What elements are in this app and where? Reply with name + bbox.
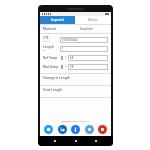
button[interactable]: 58 [68, 64, 108, 70]
button[interactable]: YouTube [98, 125, 107, 134]
button[interactable]: Metric [75, 16, 111, 24]
staticText: Total Length [43, 88, 62, 92]
staticText: in [43, 49, 45, 52]
staticText: 1 [62, 47, 64, 51]
button[interactable]: 1 [60, 46, 108, 52]
button[interactable]: Thermometer [60, 56, 64, 60]
button[interactable]: Facebook [71, 125, 80, 134]
staticText: Material [43, 27, 56, 31]
button[interactable]: Ref Temp [40, 53, 111, 62]
button[interactable]: Back [51, 137, 59, 145]
staticText: Length [43, 45, 54, 49]
button[interactable]: Home [72, 137, 80, 145]
staticText: Metric [88, 18, 98, 22]
staticText: 58 [70, 65, 74, 69]
button[interactable]: Recents [92, 137, 100, 145]
staticText: 10⁻⁶/°F [43, 40, 50, 43]
button[interactable]: 0.00000444 [60, 37, 108, 43]
staticText: 68 [70, 56, 74, 60]
staticText: CTE [43, 36, 49, 40]
staticText: Imperial [51, 18, 64, 22]
button[interactable]: Imperial [40, 16, 75, 24]
staticText: NEWSOM SOFTWARE, INC. [40, 120, 111, 123]
button[interactable]: Material [40, 25, 111, 33]
staticText: Ref Temp [43, 56, 58, 60]
button[interactable]: 68 [68, 55, 108, 61]
staticText: Mat Temp [43, 65, 59, 69]
button[interactable]: Twitter [44, 125, 53, 134]
staticText: ° [65, 55, 67, 60]
staticText: Graphite [80, 27, 94, 31]
button[interactable]: Length [40, 44, 111, 53]
staticText: 0.00000444 [62, 38, 78, 42]
button[interactable]: Mat Temp [40, 62, 111, 71]
button[interactable]: CTE [40, 35, 111, 44]
button[interactable]: Share [85, 125, 94, 134]
button[interactable]: Thermometer [60, 65, 64, 69]
staticText: ° [65, 64, 67, 69]
staticText: Change in Length [43, 76, 70, 80]
button[interactable]: LinkedIn [58, 125, 67, 134]
